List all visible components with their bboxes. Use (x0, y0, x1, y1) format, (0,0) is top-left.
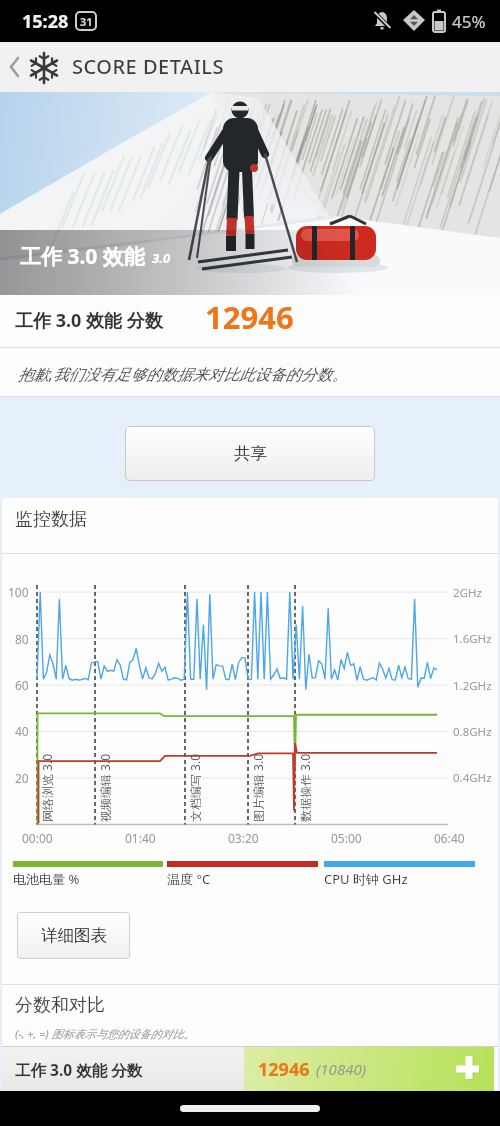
staticText: 工作 3.0 效能 分数 (15, 1059, 143, 1080)
staticText: 1.2GHz (453, 678, 492, 694)
staticText: 03:20 (228, 830, 259, 846)
staticText: 工作 3.0 效能 (20, 242, 145, 271)
staticText: 20 (15, 770, 29, 786)
staticText: 05:00 (331, 830, 362, 846)
staticText: 抱歉,我们没有足够的数据来对比此设备的分数。 (18, 363, 348, 384)
staticText: 文档编写 3.0 (187, 753, 201, 822)
staticText: 100 (8, 584, 29, 600)
staticText: 网络浏览 3.0 (39, 753, 53, 822)
staticText: 监控数据 (15, 508, 87, 531)
staticText: (-, +, =) 图标表示与您的设备的对比。 (15, 1026, 195, 1041)
staticText: 12946 (205, 296, 294, 338)
staticText: 12946 (258, 1057, 310, 1082)
button[interactable] (0, 42, 70, 92)
staticText: 80 (15, 631, 29, 647)
staticText: 31 (80, 14, 93, 29)
staticText: 40 (15, 723, 29, 739)
button[interactable]: 详细图表 (17, 912, 130, 959)
staticText: CPU 时钟 GHz (324, 870, 408, 888)
staticText: 温度 °C (167, 870, 211, 888)
staticText: 共享 (234, 443, 267, 464)
staticText: 45% (452, 10, 486, 33)
staticText: 15:28 (22, 9, 69, 34)
staticText: 01:40 (125, 830, 156, 846)
button[interactable]: 工作 3.0 效能 分数 (2, 1047, 244, 1091)
staticText: 2GHz (453, 585, 482, 601)
staticText: 00:00 (22, 830, 53, 846)
staticText: 图片编辑 3.0 (250, 753, 264, 822)
staticText: 视频编辑 3.0 (97, 753, 111, 822)
staticText: 60 (15, 677, 29, 693)
staticText: 1.6GHz (453, 631, 492, 647)
staticText: 工作 3.0 效能 分数 (15, 308, 163, 333)
staticText: 分数和对比 (15, 994, 105, 1017)
button[interactable]: 共享 (125, 426, 375, 481)
staticText: (10840) (316, 1059, 367, 1079)
staticText: 数据操作 3.0 (297, 753, 311, 822)
staticText: 0.8GHz (453, 724, 492, 740)
staticText: 详细图表 (41, 925, 107, 946)
staticText: 电池电量 % (13, 870, 80, 888)
button[interactable]: 12946 (244, 1047, 494, 1091)
staticText: SCORE DETAILS (72, 53, 224, 80)
staticText: 3.0 (152, 249, 171, 267)
staticText: 06:40 (434, 830, 465, 846)
staticText: 0.4GHz (453, 770, 492, 786)
